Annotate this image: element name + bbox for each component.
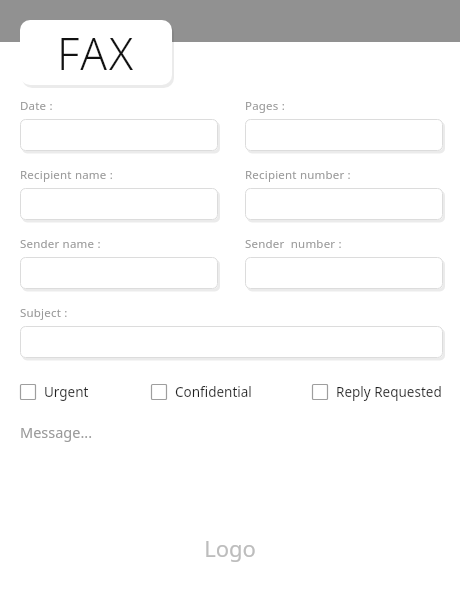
button[interactable]: FAX xyxy=(20,20,172,85)
button[interactable] xyxy=(245,188,443,220)
button[interactable]: Confidential xyxy=(151,383,312,401)
button[interactable] xyxy=(20,257,218,289)
staticText: Sender number : xyxy=(245,236,342,252)
staticText: Date : xyxy=(20,98,53,114)
button[interactable] xyxy=(20,188,218,220)
staticText: Pages : xyxy=(245,98,285,114)
staticText: Recipient name : xyxy=(20,167,113,183)
button[interactable] xyxy=(20,119,218,151)
staticText: Sender name : xyxy=(20,236,101,252)
staticText: Subject : xyxy=(20,305,68,321)
staticText: Message... xyxy=(20,422,93,442)
staticText: Reply Requested xyxy=(336,383,442,401)
staticText: Urgent xyxy=(44,383,89,401)
staticText: Confidential xyxy=(175,383,252,401)
button[interactable] xyxy=(245,257,443,289)
staticText: FAX xyxy=(57,23,136,83)
button[interactable] xyxy=(20,326,443,358)
button[interactable]: Logo xyxy=(204,533,256,563)
button[interactable]: Reply Requested xyxy=(312,383,442,401)
button[interactable] xyxy=(245,119,443,151)
staticText: Recipient number : xyxy=(245,167,351,183)
button[interactable]: Urgent xyxy=(20,383,151,401)
